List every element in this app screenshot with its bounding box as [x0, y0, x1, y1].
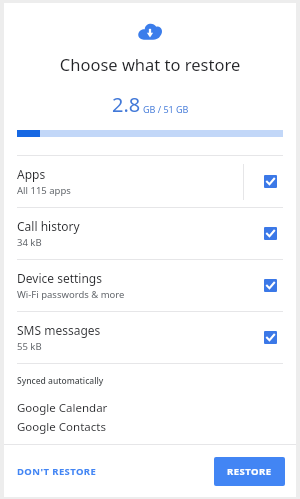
button[interactable]: Device settings [4, 260, 296, 311]
staticText: RESTORE [227, 465, 272, 478]
staticText: DON'T RESTORE [17, 465, 97, 478]
staticText: Apps [17, 166, 46, 182]
button[interactable]: Call history [4, 208, 296, 259]
staticText: Wi-Fi passwords & more [17, 288, 125, 301]
staticText: 55 kB [17, 340, 42, 353]
button[interactable]: Apps [4, 156, 296, 207]
staticText: Synced automatically [17, 375, 104, 387]
staticText: Call history [17, 218, 80, 234]
staticText: Google Contacts [17, 419, 106, 435]
staticText: 34 kB [17, 236, 42, 249]
staticText: Device settings [17, 270, 102, 286]
staticText: Choose what to restore [4, 53, 296, 75]
staticText: GB / 51 GB [143, 103, 189, 115]
button[interactable]: RESTORE [214, 457, 285, 486]
staticText: 2.8 [112, 91, 141, 118]
staticText: SMS messages [17, 322, 101, 338]
staticText: Google Calendar [17, 400, 108, 416]
other: Cloud download [137, 22, 163, 41]
button[interactable]: SMS messages [4, 312, 296, 363]
staticText: All 115 apps [17, 184, 71, 197]
button[interactable]: DON'T RESTORE [11, 458, 103, 485]
